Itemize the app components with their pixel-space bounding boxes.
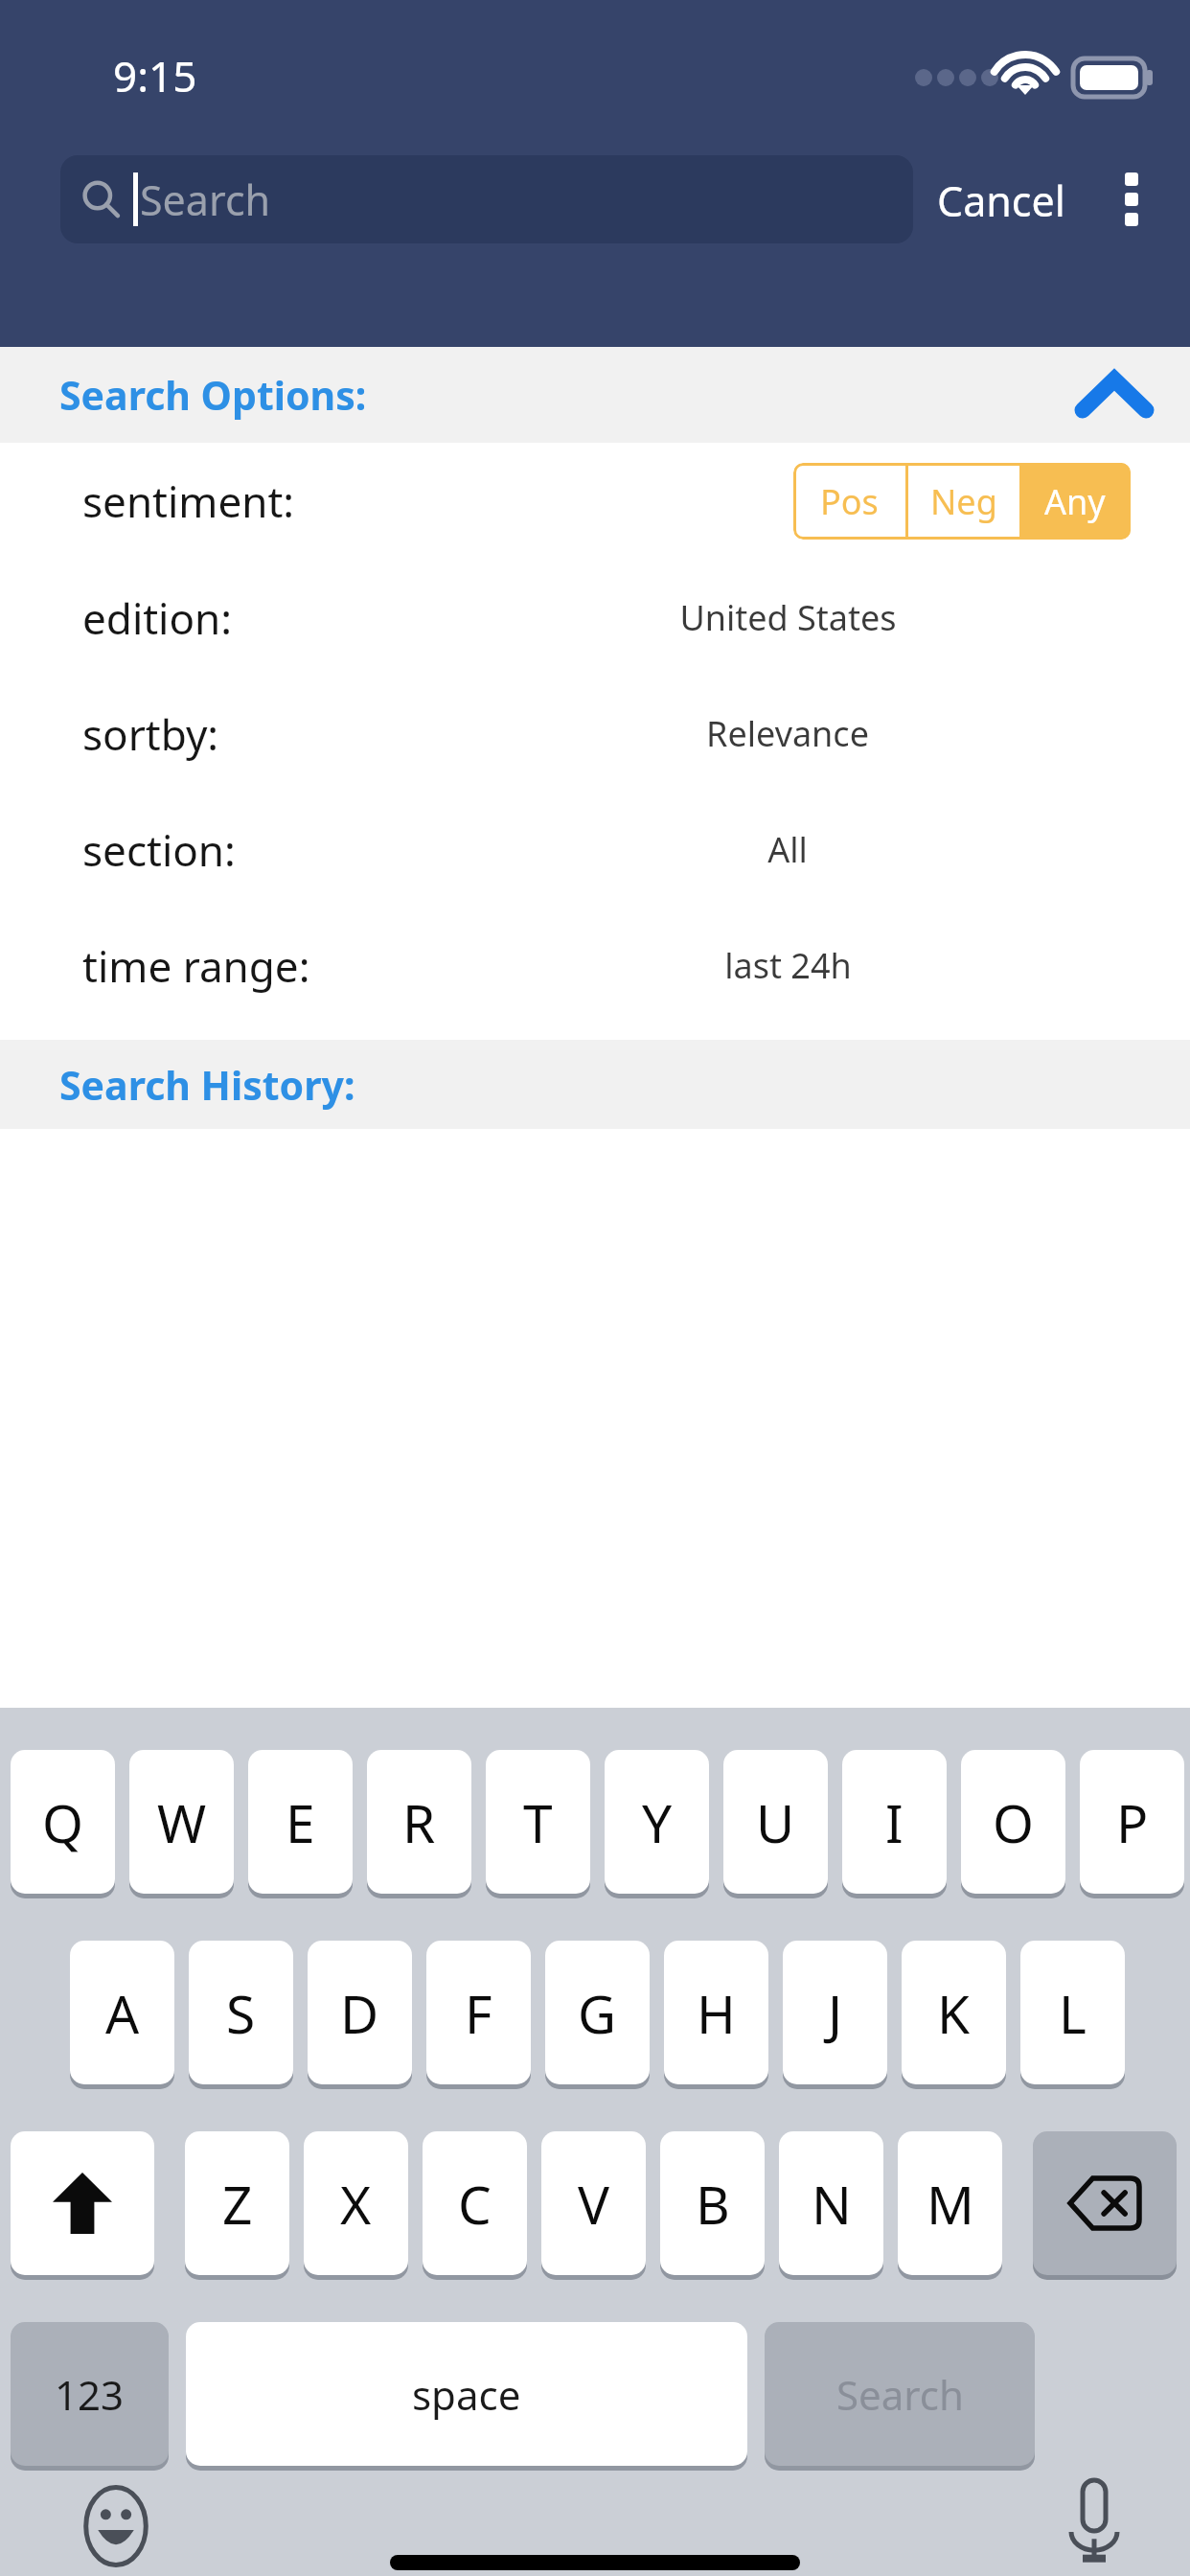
staticText: F xyxy=(465,1977,492,2049)
staticText: section: xyxy=(82,821,236,879)
button[interactable]: Backspace xyxy=(1033,2131,1177,2275)
staticText: Search History: xyxy=(59,1058,355,1112)
staticText: I xyxy=(885,1786,904,1858)
button[interactable]: S xyxy=(189,1941,293,2084)
staticText: United States xyxy=(679,594,897,641)
button[interactable]: B xyxy=(660,2131,765,2275)
button[interactable]: I xyxy=(842,1750,947,1894)
button[interactable]: Z xyxy=(185,2131,289,2275)
staticText: Q xyxy=(42,1786,83,1858)
staticText: Pos xyxy=(820,478,879,525)
staticText: last 24h xyxy=(724,942,852,989)
button[interactable]: M xyxy=(898,2131,1002,2275)
staticText: edition: xyxy=(82,589,233,647)
staticText: S xyxy=(226,1977,256,2049)
button[interactable]: Search xyxy=(765,2322,1035,2466)
staticText: B xyxy=(696,2168,730,2240)
button[interactable]: space xyxy=(186,2322,747,2466)
button[interactable]: Cancel xyxy=(937,172,1065,229)
staticText: Search Options: xyxy=(59,368,367,422)
button[interactable]: Any xyxy=(1019,463,1131,540)
button[interactable]: O xyxy=(961,1750,1065,1894)
staticText: sentiment: xyxy=(82,472,295,530)
button[interactable]: Search xyxy=(60,155,913,243)
button[interactable]: V xyxy=(541,2131,646,2275)
staticText: Y xyxy=(642,1786,673,1858)
button[interactable]: D xyxy=(308,1941,412,2084)
button[interactable]: N xyxy=(779,2131,883,2275)
staticText: L xyxy=(1059,1977,1087,2049)
staticText: T xyxy=(523,1786,553,1858)
staticText: Search xyxy=(836,2367,964,2422)
staticText: U xyxy=(756,1786,795,1858)
button[interactable]: section: xyxy=(0,792,1190,908)
staticText: N xyxy=(812,2168,852,2240)
staticText: Search xyxy=(140,172,271,228)
button[interactable]: T xyxy=(486,1750,590,1894)
staticText: H xyxy=(697,1977,736,2049)
button[interactable]: Neg xyxy=(908,463,1019,540)
button[interactable]: Voice input xyxy=(1056,2476,1133,2574)
staticText: A xyxy=(105,1977,140,2049)
button[interactable]: sentiment: xyxy=(0,443,1190,560)
button[interactable]: X xyxy=(304,2131,408,2275)
staticText: D xyxy=(340,1977,379,2049)
staticText: O xyxy=(993,1786,1034,1858)
button[interactable]: Search Options: xyxy=(0,347,1190,443)
button[interactable]: E xyxy=(248,1750,353,1894)
staticText: space xyxy=(412,2367,521,2422)
staticText: time range: xyxy=(82,937,310,995)
staticText: 123 xyxy=(55,2367,125,2422)
staticText: W xyxy=(157,1786,207,1858)
button[interactable]: J xyxy=(783,1941,887,2084)
button[interactable]: P xyxy=(1080,1750,1184,1894)
button[interactable]: 123 xyxy=(11,2322,169,2466)
button[interactable]: Search History: xyxy=(0,1040,1190,1129)
button[interactable]: Y xyxy=(605,1750,709,1894)
button[interactable]: R xyxy=(367,1750,471,1894)
button[interactable]: Q xyxy=(11,1750,115,1894)
staticText: Z xyxy=(222,2168,253,2240)
staticText: Neg xyxy=(930,478,997,525)
staticText: Any xyxy=(1044,478,1106,525)
staticText: sortby: xyxy=(82,705,219,763)
staticText: R xyxy=(402,1786,436,1858)
button[interactable]: Emoji keyboard xyxy=(72,2482,160,2570)
staticText: V xyxy=(578,2168,610,2240)
button[interactable]: W xyxy=(129,1750,234,1894)
button[interactable]: Pos xyxy=(793,463,905,540)
button[interactable]: time range: xyxy=(0,908,1190,1023)
staticText: G xyxy=(578,1977,617,2049)
other: Collapse search options xyxy=(1073,368,1156,422)
staticText: Relevance xyxy=(706,710,869,757)
button[interactable]: U xyxy=(723,1750,828,1894)
staticText: K xyxy=(937,1977,971,2049)
staticText: P xyxy=(1116,1786,1149,1858)
button[interactable]: A xyxy=(70,1941,174,2084)
button[interactable]: L xyxy=(1020,1941,1125,2084)
button[interactable]: K xyxy=(902,1941,1006,2084)
button[interactable]: edition: xyxy=(0,560,1190,676)
button[interactable]: More options xyxy=(1104,153,1159,245)
button[interactable]: G xyxy=(545,1941,650,2084)
button[interactable]: H xyxy=(664,1941,768,2084)
staticText: E xyxy=(286,1786,315,1858)
staticText: All xyxy=(767,826,808,873)
button[interactable]: Shift xyxy=(11,2131,154,2275)
staticText: J xyxy=(828,1977,843,2049)
button[interactable]: sortby: xyxy=(0,676,1190,792)
button[interactable]: F xyxy=(426,1941,531,2084)
staticText: M xyxy=(927,2168,974,2240)
staticText: 9:15 xyxy=(113,47,197,104)
staticText: X xyxy=(340,2168,372,2240)
button[interactable]: C xyxy=(423,2131,527,2275)
staticText: C xyxy=(458,2168,492,2240)
